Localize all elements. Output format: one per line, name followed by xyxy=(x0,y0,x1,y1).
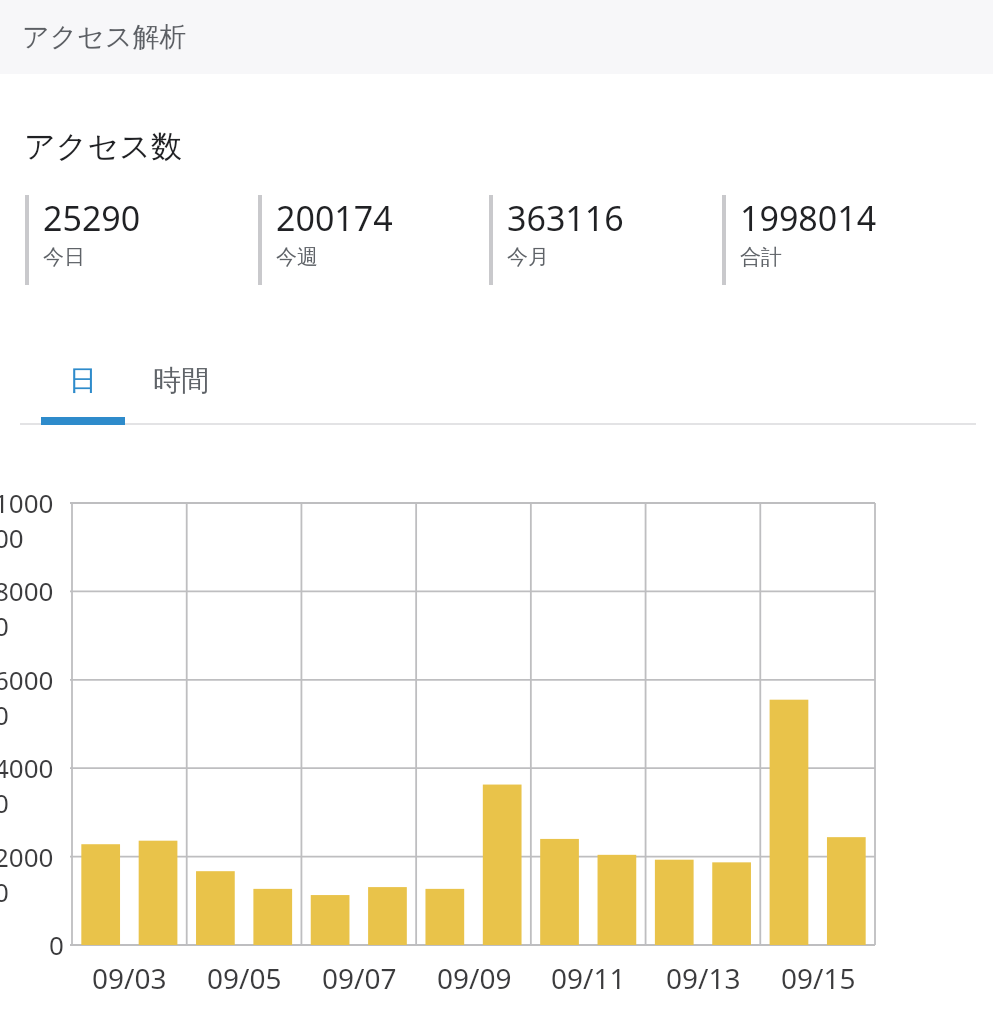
staticText: 今日 xyxy=(43,244,85,270)
button[interactable]: 25290 xyxy=(25,195,250,287)
button[interactable]: 時間 xyxy=(133,355,229,405)
staticText: 25290 xyxy=(43,195,141,241)
staticText: 0 xyxy=(49,927,64,962)
button[interactable]: 200174 xyxy=(258,195,483,287)
staticText: 合計 xyxy=(740,244,782,270)
staticText: 60000 xyxy=(0,662,64,732)
staticText: 09/09 xyxy=(437,959,512,997)
staticText: 363116 xyxy=(507,195,624,241)
staticText: 20000 xyxy=(0,839,64,909)
staticText: 200174 xyxy=(276,195,393,241)
staticText: アクセス数 xyxy=(24,127,182,166)
staticText: 100000 xyxy=(0,485,64,555)
staticText: 09/05 xyxy=(207,959,282,997)
staticText: 日 xyxy=(69,363,97,398)
button[interactable]: 1998014 xyxy=(722,195,947,287)
staticText: 09/11 xyxy=(551,959,626,997)
staticText: 今月 xyxy=(507,244,549,270)
staticText: 時間 xyxy=(153,363,209,398)
staticText: アクセス解析 xyxy=(22,20,187,54)
staticText: 09/13 xyxy=(666,959,741,997)
button[interactable]: 日 xyxy=(41,355,125,405)
staticText: 09/03 xyxy=(92,959,167,997)
staticText: 09/07 xyxy=(322,959,397,997)
staticText: 今週 xyxy=(276,244,318,270)
staticText: 40000 xyxy=(0,750,64,820)
staticText: 09/15 xyxy=(781,959,856,997)
staticText: 80000 xyxy=(0,573,64,643)
button[interactable]: 363116 xyxy=(489,195,714,287)
staticText: 1998014 xyxy=(740,195,877,241)
other: 日別アクセス数グラフ xyxy=(0,482,993,1024)
